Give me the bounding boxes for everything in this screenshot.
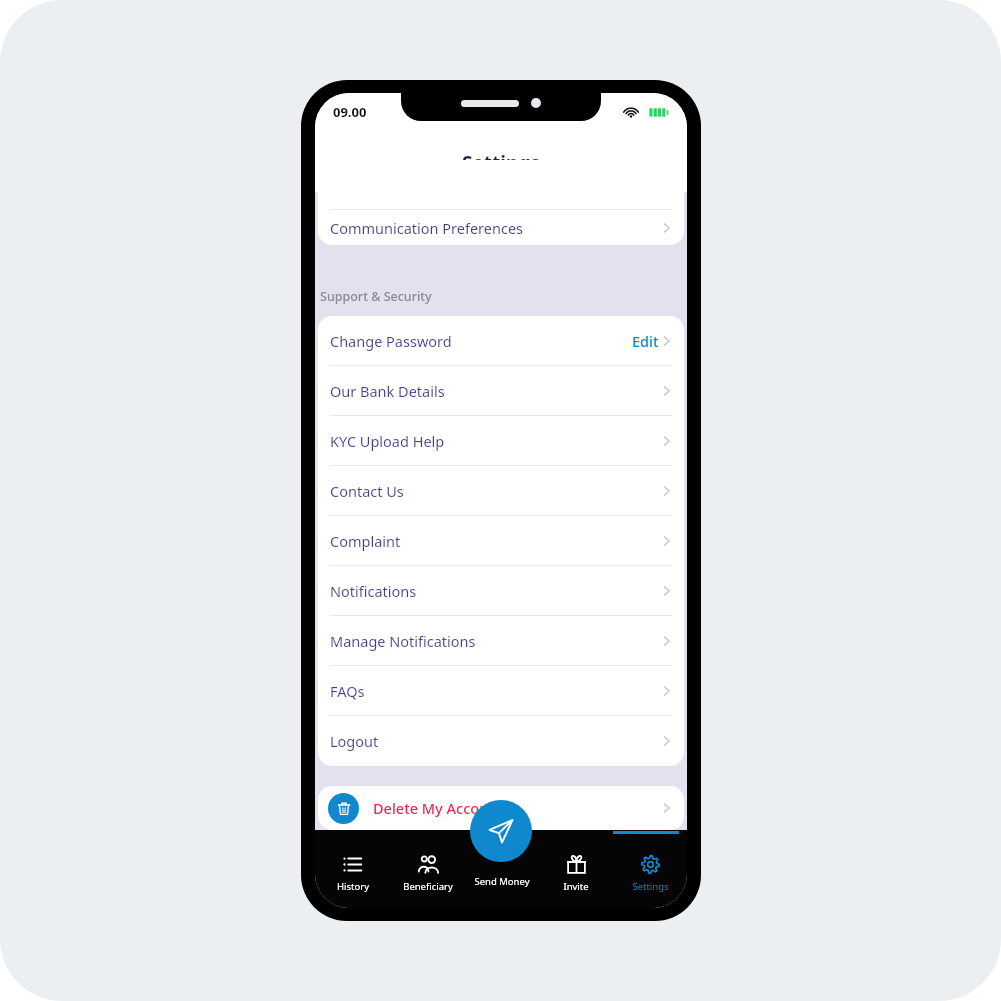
staticText: Communication Preferences [330, 218, 524, 238]
button[interactable]: KYC Upload Help [318, 416, 684, 466]
button[interactable]: Beneficiary [390, 830, 465, 908]
button[interactable]: Delete My Account [318, 786, 684, 830]
staticText: History [337, 880, 369, 893]
staticText: KYC Upload Help [330, 431, 445, 451]
staticText: Beneficiary [403, 880, 453, 893]
staticText: Complaint [330, 531, 401, 551]
button[interactable]: Notifications [318, 566, 684, 616]
button[interactable]: Our Bank Details [318, 366, 684, 416]
button[interactable]: Logout [318, 716, 684, 766]
button[interactable]: Send Money [465, 830, 539, 908]
staticText: Manage Notifications [330, 631, 476, 651]
staticText: Change Password [330, 331, 452, 351]
staticText: Edit [632, 331, 659, 351]
staticText: Support & Security [320, 288, 432, 305]
button[interactable] [318, 160, 684, 210]
button[interactable]: Contact Us [318, 466, 684, 516]
button[interactable]: Change Password [318, 316, 684, 366]
button[interactable]: Settings [613, 830, 687, 908]
button[interactable]: Complaint [318, 516, 684, 566]
staticText: Our Bank Details [330, 381, 445, 401]
button[interactable]: History [315, 830, 390, 908]
button[interactable]: Manage Notifications [318, 616, 684, 666]
staticText: Settings [632, 880, 669, 893]
staticText: Delete My Account [373, 798, 503, 818]
button[interactable]: Communication Preferences [318, 210, 684, 245]
staticText: Contact Us [330, 481, 404, 501]
staticText: Settings [462, 150, 540, 176]
staticText: Send Money [474, 875, 530, 888]
button[interactable]: Invite [539, 830, 613, 908]
button[interactable]: Send Money [470, 800, 532, 862]
staticText: 09.00 [333, 103, 367, 121]
staticText: Invite [563, 880, 589, 893]
button[interactable]: FAQs [318, 666, 684, 716]
staticText: Notifications [330, 581, 417, 601]
staticText: Logout [330, 731, 379, 751]
staticText: FAQs [330, 681, 365, 701]
